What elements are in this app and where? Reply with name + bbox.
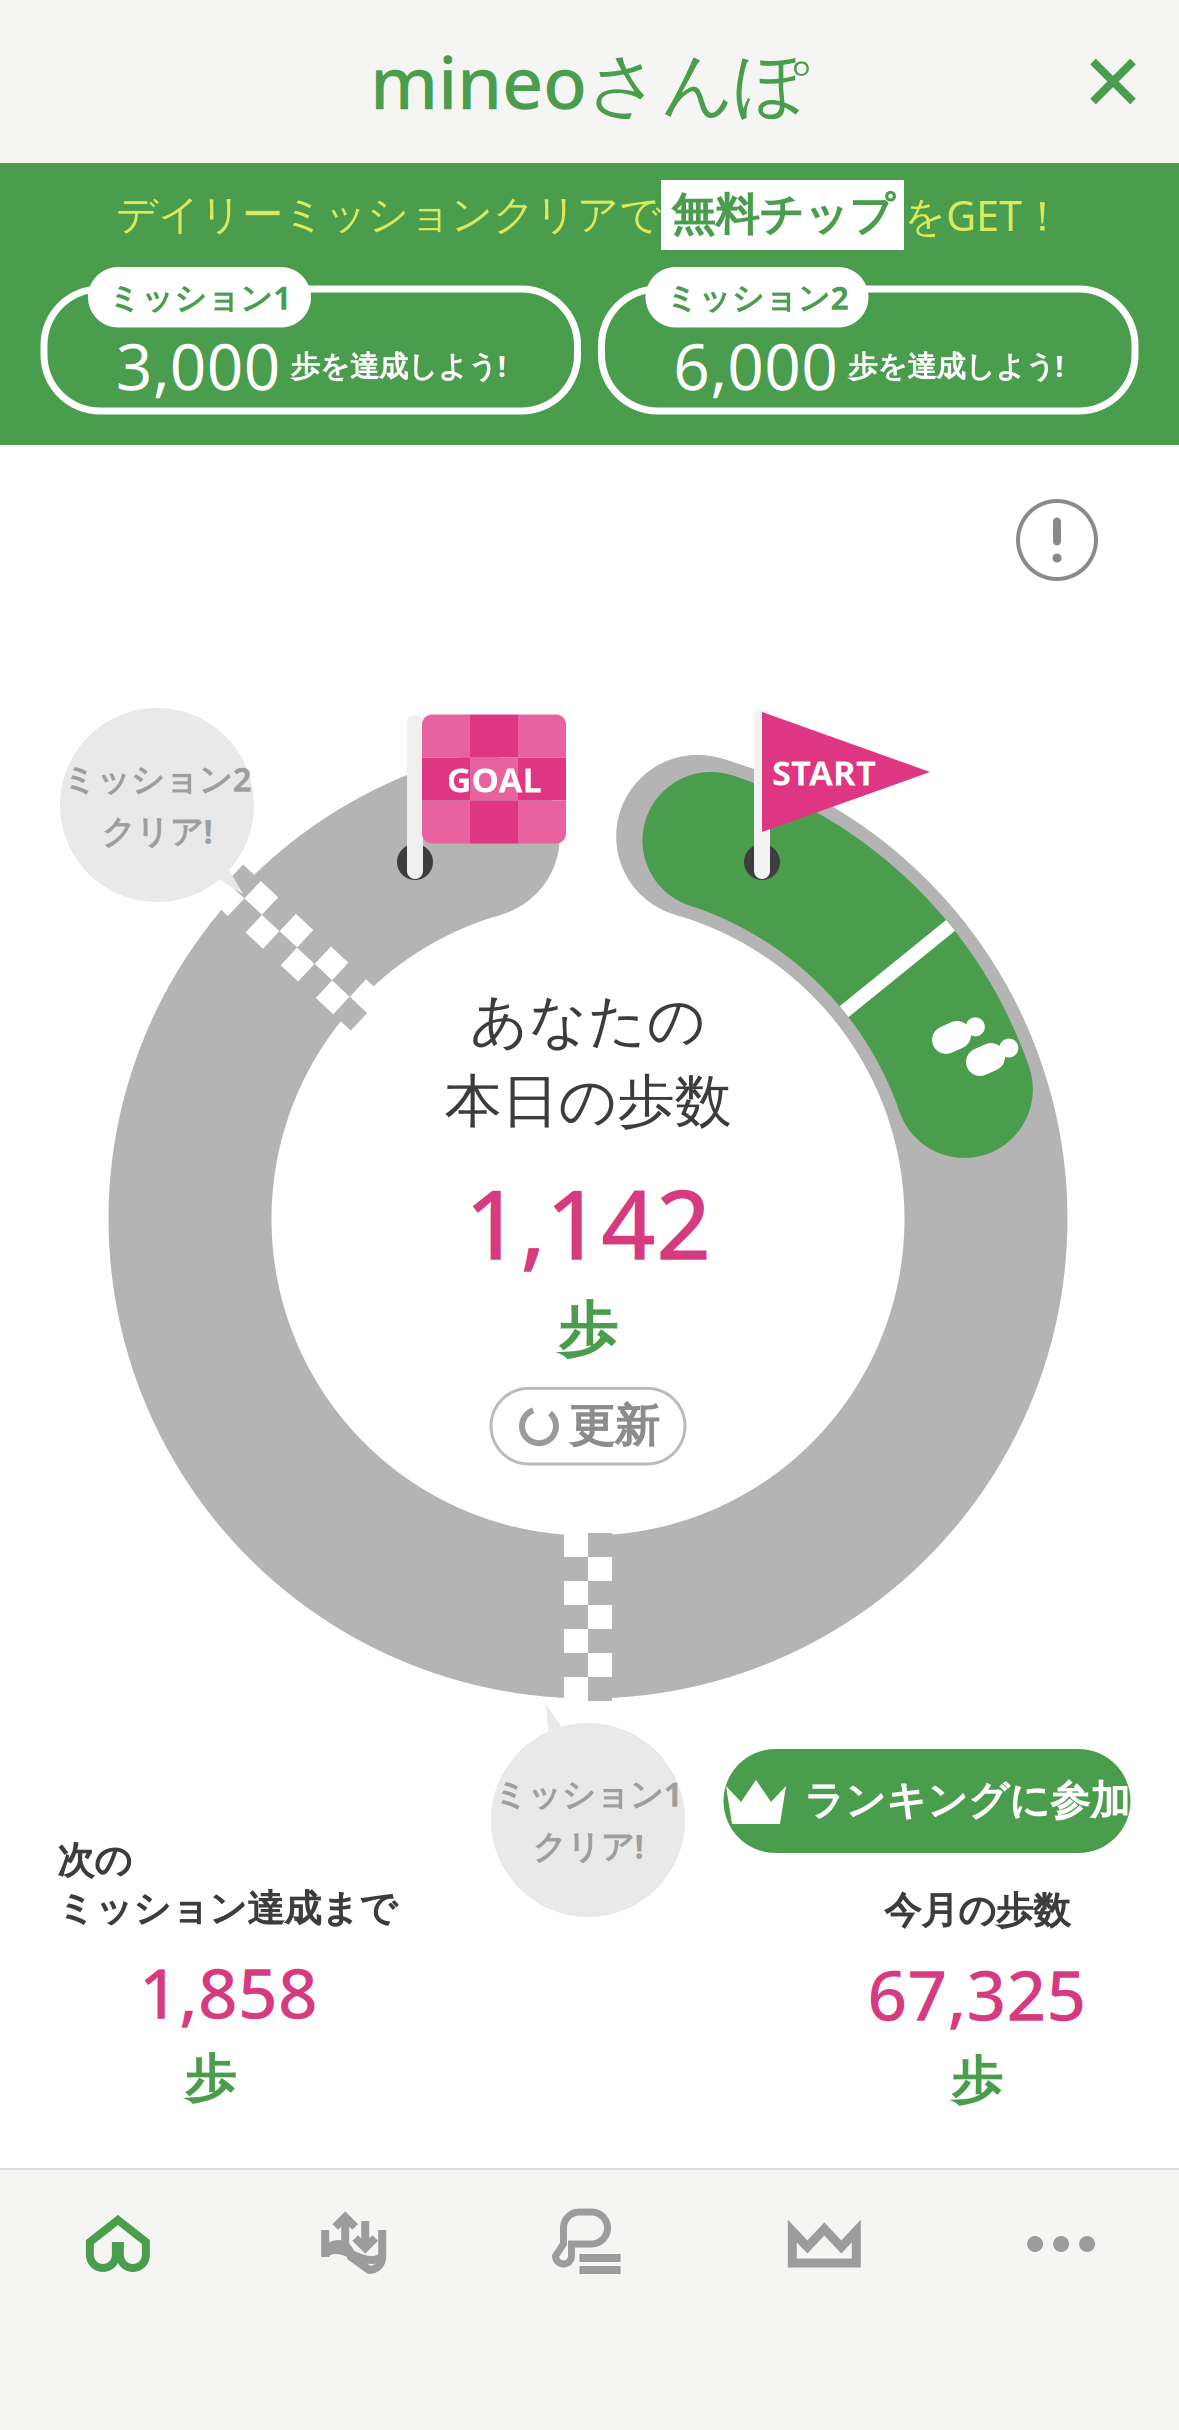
staticText: 更新 — [569, 1398, 659, 1454]
staticText: 1,858 — [139, 1946, 318, 2038]
staticText: 無料チップ — [671, 188, 894, 242]
button[interactable]: ランキング — [707, 2170, 943, 2318]
staticText: 6,000 — [673, 323, 838, 408]
staticText: 歩を達成しよう! — [848, 346, 1063, 385]
staticText: ミッション2 — [665, 276, 848, 318]
staticText: START — [772, 749, 876, 795]
staticText: デイリーミッションクリアで — [116, 190, 661, 240]
staticText: 次の — [57, 1838, 132, 1884]
button[interactable]: その他 — [943, 2170, 1179, 2318]
staticText: GOAL — [446, 756, 541, 802]
button[interactable]: 更新 — [491, 1388, 685, 1464]
staticText: ランキングに参加 — [804, 1776, 1130, 1825]
staticText: クリア! — [101, 809, 212, 853]
staticText: 1,142 — [465, 1159, 711, 1286]
staticText: 3,000 — [116, 323, 281, 408]
staticText: mineoさんぽ — [370, 33, 809, 129]
staticText: ミッション2 — [62, 757, 251, 801]
staticText: 今月の歩数 — [884, 1888, 1070, 1934]
staticText: クリア! — [532, 1824, 643, 1868]
button[interactable]: データ — [236, 2170, 472, 2318]
staticText: 本日の歩数 — [444, 1066, 731, 1137]
staticText: 歩を達成しよう! — [291, 346, 506, 385]
staticText: をGET！ — [904, 188, 1063, 242]
button[interactable]: ランキングに参加 — [723, 1749, 1130, 1853]
staticText: 歩 — [185, 2048, 236, 2110]
button[interactable]: 閉じる — [1087, 55, 1179, 107]
button[interactable]: 説明 — [1015, 498, 1099, 582]
staticText: ミッション1 — [493, 1772, 682, 1816]
staticText: 67,325 — [867, 1948, 1086, 2040]
staticText: ミッション達成まで — [57, 1886, 397, 1932]
button[interactable]: チャット — [472, 2170, 707, 2318]
staticText: あなたの — [470, 986, 706, 1056]
staticText: 歩 — [951, 2050, 1002, 2112]
staticText: ミッション1 — [108, 276, 291, 318]
staticText: 歩 — [558, 1294, 617, 1366]
button[interactable]: ホーム — [0, 2170, 236, 2318]
